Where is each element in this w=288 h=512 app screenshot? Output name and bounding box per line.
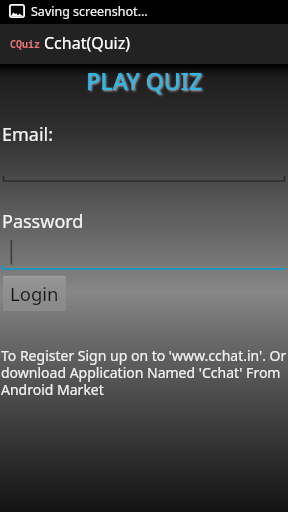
staticText: Password — [2, 209, 84, 234]
staticText: CQuiz — [10, 37, 40, 51]
staticText: PLAY QUIZ — [0, 65, 288, 96]
staticText: Login — [10, 281, 59, 306]
button[interactable]: Email input — [0, 148, 288, 183]
staticText: Saving screenshot… — [31, 3, 148, 20]
staticText: Cchat(Quiz) — [44, 32, 131, 54]
button[interactable]: CQuiz — [0, 24, 288, 64]
staticText: To Register Sign up on to 'www.cchat.in'… — [1, 346, 287, 399]
staticText: Email: — [2, 122, 54, 147]
button[interactable]: Login — [3, 276, 66, 311]
button[interactable]: Password input — [0, 236, 288, 273]
